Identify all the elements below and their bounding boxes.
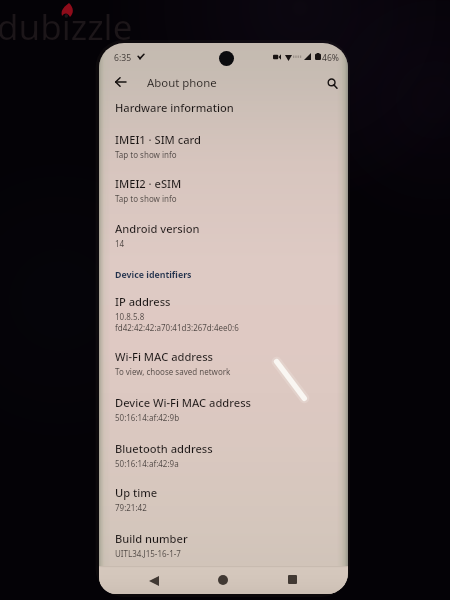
staticText: IMEI2 · eSIM: [115, 176, 182, 191]
staticText: 50:16:14:af:42:9a: [115, 458, 179, 469]
staticText: UITL34.J15-16-1-7: [115, 548, 181, 559]
staticText: To view, choose saved network: [115, 366, 231, 377]
button[interactable]: Back: [106, 67, 135, 96]
staticText: fd42:42:42:a70:41d3:267d:4ee0:6: [115, 322, 239, 333]
button[interactable]: Recent apps: [278, 565, 306, 593]
staticText: 46%: [322, 52, 339, 64]
staticText: Tap to show info: [115, 149, 177, 160]
staticText: Bluetooth address: [115, 441, 213, 456]
button[interactable]: Wi-Fi MAC address: [99, 344, 348, 382]
staticText: Wi-Fi MAC address: [115, 349, 214, 364]
button[interactable]: IMEI1 · SIM card: [99, 127, 348, 165]
staticText: 14: [115, 238, 125, 249]
button[interactable]: Back: [140, 567, 168, 594]
button[interactable]: IMEI2 · eSIM: [99, 171, 348, 209]
button[interactable]: Home: [209, 566, 237, 594]
staticText: Tap to show info: [115, 193, 177, 204]
staticText: Device identifiers: [115, 269, 192, 281]
staticText: About phone: [147, 75, 217, 91]
button[interactable]: Up time: [99, 480, 348, 518]
staticText: 6:35: [114, 52, 132, 64]
staticText: 10.8.5.8: [115, 311, 145, 322]
staticText: IMEI1 · SIM card: [115, 132, 201, 147]
button[interactable]: IP address: [99, 289, 348, 338]
staticText: dubizzle: [0, 3, 133, 51]
staticText: Device Wi-Fi MAC address: [115, 395, 251, 410]
staticText: IP address: [115, 294, 171, 309]
staticText: 79:21:42: [115, 502, 147, 513]
button[interactable]: Search: [319, 70, 346, 97]
staticText: Build number: [115, 531, 188, 546]
staticText: Hardware information: [115, 100, 234, 115]
staticText: Android version: [115, 221, 200, 236]
button[interactable]: Build number: [99, 526, 348, 564]
staticText: Up time: [115, 485, 158, 500]
button[interactable]: Android version: [99, 216, 348, 254]
button[interactable]: Device Wi-Fi MAC address: [99, 390, 348, 428]
staticText: 50:16:14:af:42:9b: [115, 412, 180, 423]
button[interactable]: Bluetooth address: [99, 436, 348, 474]
